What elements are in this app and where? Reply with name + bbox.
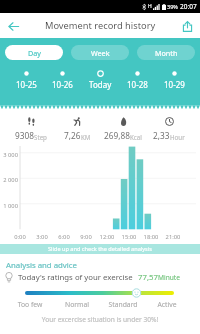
staticText: Today <box>89 79 112 90</box>
staticText: Hour <box>170 133 185 141</box>
button[interactable]: 10-26 <box>52 68 73 90</box>
button[interactable]: Back <box>3 16 23 36</box>
button[interactable]: Slide up and check the detailed analysis <box>0 244 200 254</box>
button[interactable]: Too few <box>8 300 52 309</box>
staticText: Slide up and check the detailed analysis <box>48 245 152 253</box>
staticText: 0:00 <box>8 233 32 241</box>
staticText: 269,88 <box>104 130 130 141</box>
button[interactable]: Today <box>89 68 112 90</box>
button[interactable]: Analysis and advice <box>6 260 77 271</box>
staticText: 1 000 <box>1 202 18 210</box>
button[interactable]: 10-29 <box>164 68 185 90</box>
staticText: Month <box>155 48 178 58</box>
staticText: 9308 <box>15 130 34 141</box>
staticText: 10-28 <box>127 79 148 90</box>
button[interactable]: 10-25 <box>16 68 37 90</box>
staticText: KM <box>81 133 91 141</box>
staticText: Week <box>91 48 110 58</box>
staticText: 10-26 <box>52 79 73 90</box>
staticText: 6:00 <box>52 233 76 241</box>
staticText: 18:00 <box>139 233 163 241</box>
staticText: Today's ratings of your exercise <box>18 272 133 283</box>
staticText: 15:00 <box>117 233 141 241</box>
button[interactable]: Active <box>145 300 189 309</box>
staticText: 21:00 <box>161 233 185 241</box>
staticText: Minute <box>158 273 180 282</box>
button[interactable]: Standard <box>101 300 145 309</box>
staticText: 3 000 <box>1 151 18 159</box>
button[interactable]: Normal <box>55 300 99 309</box>
staticText: 12:00 <box>95 233 119 241</box>
staticText: 2 000 <box>1 176 18 184</box>
staticText: H <box>148 3 152 10</box>
staticText: Movement record history <box>45 19 156 32</box>
button[interactable]: Week <box>71 45 129 60</box>
staticText: 3:00 <box>30 233 54 241</box>
staticText: 9:00 <box>74 233 98 241</box>
staticText: 7,26 <box>64 130 81 141</box>
staticText: Step <box>34 133 47 141</box>
button[interactable]: Month <box>137 45 195 60</box>
staticText: 39% <box>167 3 178 10</box>
button[interactable]: 10-28 <box>127 68 148 90</box>
staticText: Your excercise situation is under 30%! <box>0 315 200 324</box>
button[interactable]: Share <box>177 16 197 36</box>
staticText: 77,57 <box>138 272 158 283</box>
staticText: 2,33 <box>153 130 170 141</box>
staticText: Day <box>28 48 41 58</box>
staticText: 10-25 <box>16 79 37 90</box>
button[interactable]: Day <box>5 45 63 60</box>
staticText: Kcal <box>130 133 142 141</box>
staticText: 20:07 <box>180 2 197 11</box>
staticText: 10-29 <box>164 79 185 90</box>
